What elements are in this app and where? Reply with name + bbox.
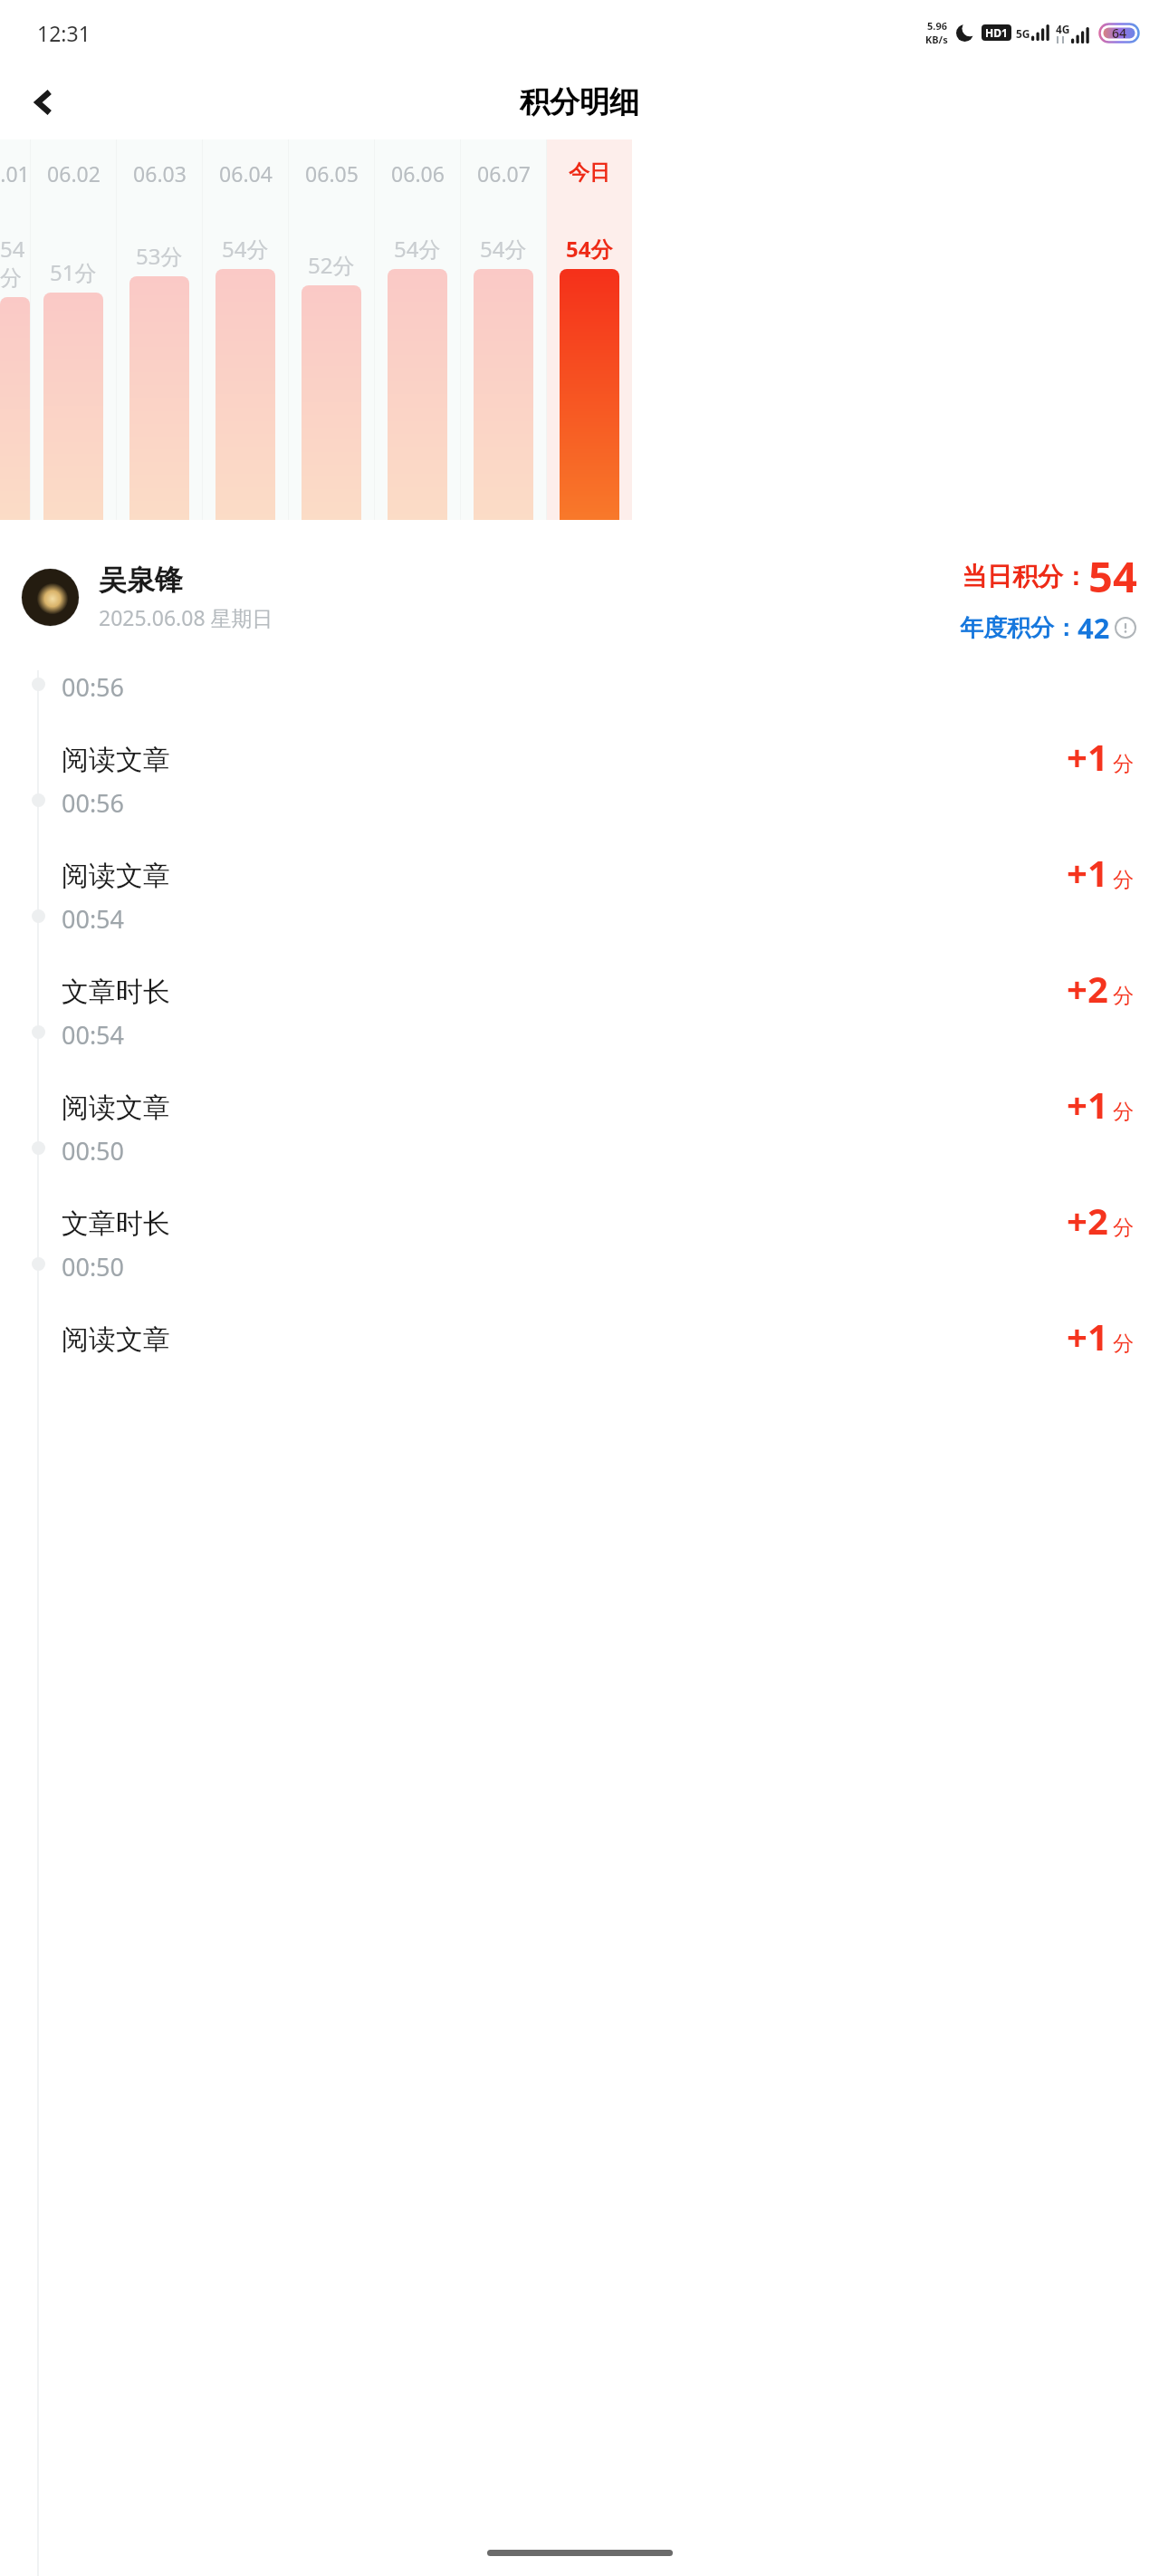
button[interactable]: 00:56 (0, 786, 1159, 902)
staticText: KB/s (925, 33, 948, 46)
staticText: 积分明细 (520, 83, 639, 121)
staticText: 2025.06.08 星期日 (99, 603, 273, 631)
button[interactable]: 00:54 (0, 1018, 1159, 1134)
staticText: 分 (1113, 1215, 1134, 1241)
button[interactable]: 00:56 (0, 670, 1159, 786)
staticText: 06.03 (133, 159, 187, 187)
staticText: 文章时长 (62, 1206, 170, 1241)
button[interactable]: Info (1114, 616, 1137, 639)
staticText: 年度积分： (960, 613, 1078, 643)
staticText: 51分 (50, 257, 97, 287)
staticText: 阅读文章 (62, 859, 170, 893)
button[interactable]: 06.05 (289, 139, 374, 520)
button[interactable]: 今日 (547, 139, 632, 520)
staticText: 54分 (480, 234, 527, 264)
staticText: 54 (1088, 547, 1137, 605)
staticText: +1 (1067, 1080, 1108, 1129)
staticText: 4G (1056, 22, 1070, 36)
staticText: 06.05 (305, 159, 359, 187)
button[interactable]: 06.04 (203, 139, 288, 520)
staticText: HD1 (985, 25, 1008, 40)
staticText: 42 (1078, 609, 1110, 647)
staticText: 当日积分： (962, 561, 1088, 592)
staticText: +1 (1067, 848, 1108, 897)
staticText: +2 (1067, 964, 1108, 1013)
button[interactable]: 00:54 (0, 902, 1159, 1018)
staticText: 00:56 (62, 786, 125, 820)
staticText: 分 (1113, 1331, 1134, 1357)
button[interactable]: 06.03 (117, 139, 202, 520)
staticText: 06.04 (219, 159, 273, 187)
staticText: 00:50 (62, 1134, 125, 1168)
button[interactable]: 00:50 (0, 1250, 1159, 1366)
staticText: 52分 (308, 250, 355, 280)
staticText: +2 (1067, 1196, 1108, 1245)
staticText: 64 (1112, 24, 1127, 42)
staticText: 分 (1113, 867, 1134, 893)
staticText: 5.96 (927, 19, 947, 33)
button[interactable]: 00:50 (0, 1134, 1159, 1250)
staticText: 吴泉锋 (99, 562, 183, 598)
button[interactable]: 吴泉锋 (22, 547, 1137, 647)
staticText: 06.02 (47, 159, 101, 187)
staticText: 5G (1016, 26, 1030, 41)
staticText: 00:54 (62, 902, 125, 936)
staticText: +1 (1067, 1312, 1108, 1360)
staticText: 00:56 (62, 670, 125, 704)
staticText: 阅读文章 (62, 1322, 170, 1357)
staticText: 54分 (0, 234, 30, 292)
staticText: 06.07 (477, 159, 531, 187)
staticText: 00:50 (62, 1250, 125, 1283)
button[interactable]: 06.06 (375, 139, 460, 520)
staticText: 06.06 (391, 159, 445, 187)
staticText: 阅读文章 (62, 1091, 170, 1125)
staticText: 53分 (136, 241, 183, 271)
staticText: 今日 (569, 159, 610, 186)
staticText: .01 (0, 159, 30, 187)
staticText: 分 (1113, 1099, 1134, 1125)
button[interactable]: Back (18, 76, 71, 129)
button[interactable]: .01 (0, 139, 30, 520)
staticText: 54分 (222, 234, 269, 264)
staticText: 54分 (566, 234, 613, 264)
button[interactable]: 06.07 (461, 139, 546, 520)
staticText: +1 (1067, 732, 1108, 781)
staticText: 分 (1113, 983, 1134, 1009)
staticText: 12:31 (37, 19, 91, 47)
staticText: 阅读文章 (62, 743, 170, 777)
staticText: 00:54 (62, 1018, 125, 1052)
staticText: 分 (1113, 751, 1134, 777)
staticText: 文章时长 (62, 975, 170, 1009)
button[interactable]: 06.02 (31, 139, 116, 520)
staticText: 54分 (394, 234, 441, 264)
